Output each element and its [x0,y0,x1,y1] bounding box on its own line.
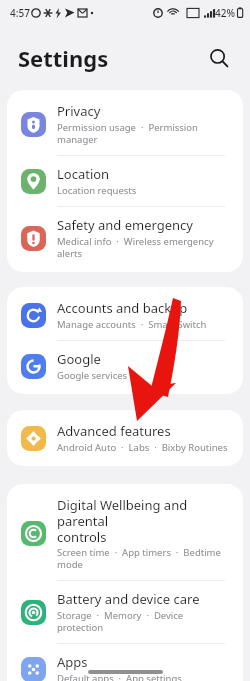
staticText: Permission usage · Permission manager [57,121,198,146]
button[interactable]: Search [202,41,236,75]
button[interactable]: Privacy [7,93,243,155]
staticText: Manage accounts · Smart Switch [57,318,207,331]
button[interactable]: Safety and emergency [7,207,243,269]
staticText: Storage · Memory · Device protection [57,609,229,634]
button[interactable]: Battery and device care [7,581,243,643]
button[interactable]: Digital Wellbeing and parental controls [7,487,243,580]
button[interactable]: Accounts and backup [7,290,243,340]
staticText: Google [57,350,101,368]
staticText: Medical info · Wireless emergency alerts [57,235,214,260]
staticText: Settings [18,43,109,73]
staticText: 4:57 [10,6,30,20]
staticText: Battery and device care [57,590,200,608]
button[interactable]: Advanced features [7,413,243,463]
staticText: Accounts and backup [57,299,188,317]
staticText: Safety and emergency [57,216,193,234]
staticText: Location [57,165,110,183]
staticText: Location requests [57,184,137,197]
button[interactable]: Google [7,341,243,391]
button[interactable]: Apps [7,644,243,681]
staticText: Android Auto · Labs · Bixby Routines [57,441,228,454]
staticText: Privacy [57,102,101,120]
staticText: Digital Wellbeing and parental controls [57,496,229,545]
staticText: Screen time · App timers · Bedtime mode [57,546,221,571]
staticText: Advanced features [57,422,171,440]
staticText: Google services [57,369,128,382]
staticText: 42% [215,6,235,20]
staticText: Apps [57,653,88,671]
staticText: Default apps · App settings [57,672,182,681]
button[interactable]: Location [7,156,243,206]
